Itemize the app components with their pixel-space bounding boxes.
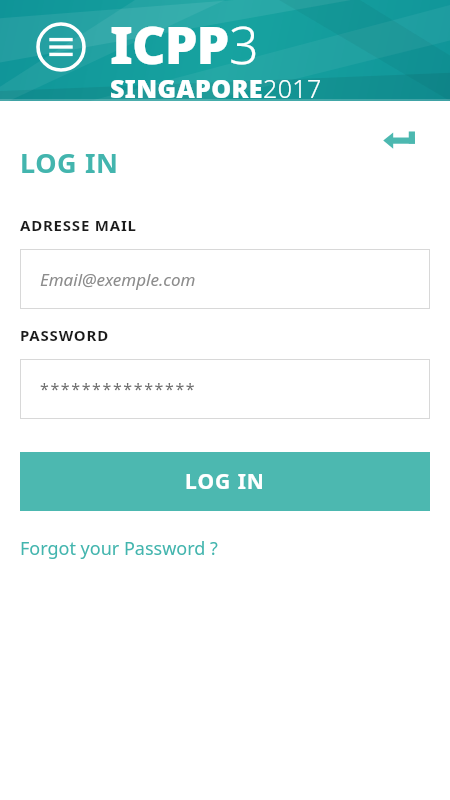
staticText: ICPP	[110, 8, 229, 79]
staticText: Forgot your Password ?	[20, 536, 218, 561]
staticText: 2017	[263, 71, 322, 101]
staticText: ADRESSE MAIL	[20, 215, 137, 235]
staticText: LOG IN	[185, 467, 265, 496]
staticText: SINGAPORE	[110, 71, 263, 101]
button[interactable]: LOG IN	[20, 452, 430, 511]
staticText: PASSWORD	[20, 325, 109, 345]
staticText: LOG IN	[20, 144, 119, 178]
button[interactable]: ***************	[20, 359, 430, 419]
button[interactable]: Open navigation menu	[36, 22, 86, 72]
button[interactable]: Forgot your Password ?	[20, 535, 225, 561]
button[interactable]: Email@exemple.com	[20, 249, 430, 309]
staticText: 3	[229, 8, 258, 79]
button[interactable]: Back	[378, 124, 422, 158]
staticText: Email@exemple.com	[40, 268, 196, 291]
staticText: ***************	[40, 378, 197, 400]
